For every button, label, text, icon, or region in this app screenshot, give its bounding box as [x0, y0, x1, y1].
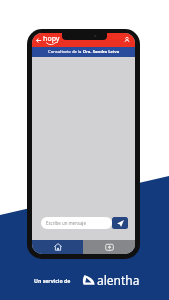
button[interactable]: Home	[32, 240, 83, 254]
button[interactable]: Profile	[123, 36, 131, 44]
staticText: Dra. Sandra Leiva	[83, 49, 120, 55]
button[interactable]: Messages	[83, 240, 135, 254]
staticText: hopy	[43, 34, 60, 44]
staticText: alentha	[97, 272, 140, 288]
button[interactable]: Escribe un mensaje	[41, 217, 112, 229]
staticText: Escribe un mensaje	[46, 220, 86, 226]
staticText: Un servicio de	[34, 277, 71, 284]
button[interactable]: Send	[112, 217, 128, 229]
button[interactable]: Back	[35, 37, 42, 44]
staticText: Consultorio de la	[48, 49, 83, 55]
